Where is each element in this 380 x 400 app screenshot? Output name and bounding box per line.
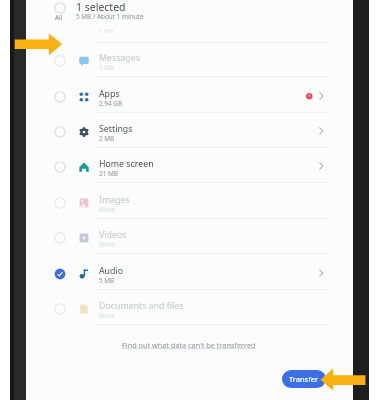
staticText: Audio bbox=[99, 265, 124, 277]
button[interactable]: Home screen bbox=[0, 148, 380, 183]
staticText: Images bbox=[99, 194, 130, 206]
staticText: None bbox=[99, 240, 116, 249]
staticText: 2.94 GB bbox=[99, 99, 123, 108]
staticText: 2 MB bbox=[99, 134, 115, 143]
staticText: 21 MB bbox=[99, 169, 118, 178]
staticText: Home screen bbox=[99, 158, 154, 170]
staticText: None bbox=[99, 311, 116, 320]
staticText: Documents and files bbox=[99, 300, 184, 312]
staticText: Transfer bbox=[289, 374, 319, 384]
staticText: Videos bbox=[99, 229, 127, 241]
staticText: Settings bbox=[99, 123, 133, 135]
button[interactable]: Images bbox=[0, 184, 380, 219]
button[interactable]: Audio bbox=[0, 255, 380, 290]
button[interactable]: Apps bbox=[0, 78, 380, 113]
button[interactable]: Find out what data can't be transferred bbox=[122, 340, 256, 350]
staticText: All bbox=[55, 13, 63, 21]
staticText: Apps bbox=[99, 88, 120, 100]
button[interactable]: Documents and files bbox=[0, 290, 380, 325]
button[interactable]: Messages bbox=[0, 42, 380, 77]
staticText: 5 MB bbox=[99, 276, 115, 285]
staticText: 5 MB / About 1 minute bbox=[76, 12, 144, 21]
button[interactable]: Transfer bbox=[282, 370, 326, 388]
staticText: None bbox=[99, 205, 116, 214]
staticText: 1 selected bbox=[76, 0, 126, 14]
staticText: 1 MB bbox=[99, 27, 114, 35]
staticText: 1 MB bbox=[99, 63, 115, 72]
button[interactable]: Settings bbox=[0, 113, 380, 148]
button[interactable]: Videos bbox=[0, 219, 380, 254]
button[interactable]: Select all bbox=[50, 0, 70, 24]
staticText: Messages bbox=[99, 52, 140, 64]
